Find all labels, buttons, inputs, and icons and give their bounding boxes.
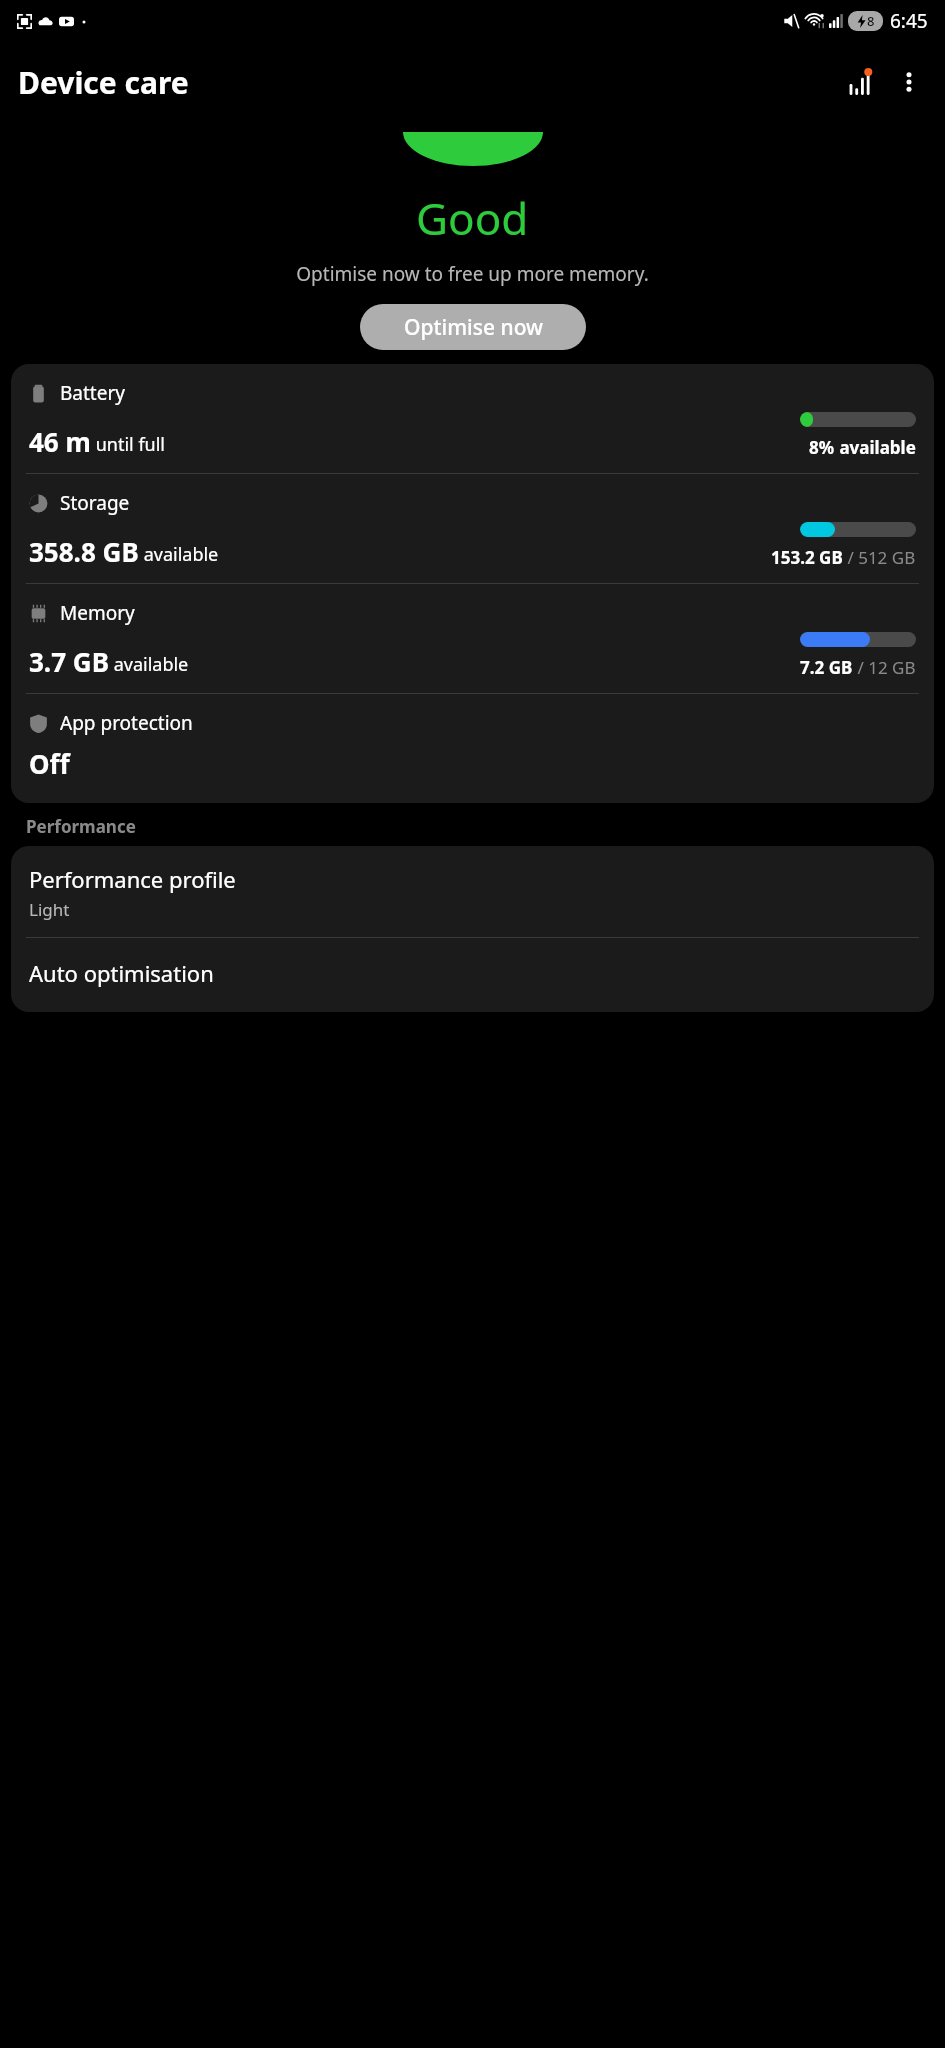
staticText: Light: [29, 898, 70, 921]
staticText: 3.7 GB: [29, 644, 109, 679]
button[interactable]: Battery: [11, 364, 934, 473]
staticText: 153.2 GB: [771, 546, 843, 569]
staticText: until full: [91, 432, 165, 457]
staticText: available: [139, 542, 219, 567]
button[interactable]: Memory: [11, 584, 934, 693]
staticText: 46 m: [29, 424, 91, 459]
staticText: Performance profile: [29, 864, 236, 894]
staticText: Good: [416, 188, 529, 248]
staticText: / 12 GB: [853, 656, 916, 679]
staticText: 8%: [809, 436, 835, 459]
staticText: Memory: [60, 600, 135, 626]
button[interactable]: App protection: [11, 694, 934, 803]
staticText: Storage: [60, 490, 130, 516]
staticText: Optimise now: [404, 313, 543, 342]
button[interactable]: Storage: [11, 474, 934, 583]
staticText: available: [835, 436, 916, 459]
button[interactable]: More options: [885, 58, 933, 106]
staticText: Performance: [26, 815, 136, 838]
staticText: Off: [29, 746, 70, 781]
button[interactable]: Performance profile: [11, 846, 934, 937]
staticText: Auto optimisation: [29, 958, 214, 988]
button[interactable]: Optimise now: [360, 304, 586, 350]
staticText: available: [109, 652, 189, 677]
staticText: Battery: [60, 380, 125, 406]
button[interactable]: Usage statistics: [837, 58, 885, 106]
staticText: 6:45: [890, 8, 928, 34]
staticText: 7.2 GB: [800, 656, 853, 679]
staticText: App protection: [60, 710, 193, 736]
staticText: 8: [867, 12, 875, 30]
button[interactable]: Auto optimisation: [11, 938, 934, 1012]
staticText: Device care: [18, 62, 189, 103]
staticText: Optimise now to free up more memory.: [296, 261, 649, 287]
staticText: 358.8 GB: [29, 534, 139, 569]
staticText: / 512 GB: [843, 546, 916, 569]
